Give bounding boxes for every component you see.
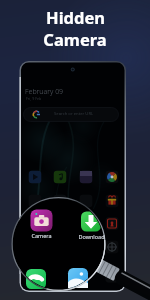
staticText: Camera [43, 28, 107, 50]
staticText: February 09 [25, 87, 64, 97]
staticText: Hidden [46, 6, 105, 28]
staticText: Search or enter URL [54, 111, 94, 117]
staticText: Camera [31, 232, 52, 239]
staticText: Fri, 9 Feb [26, 96, 42, 101]
button[interactable]: Scan for hidden cameras [12, 197, 106, 291]
staticText: Download [78, 233, 105, 240]
